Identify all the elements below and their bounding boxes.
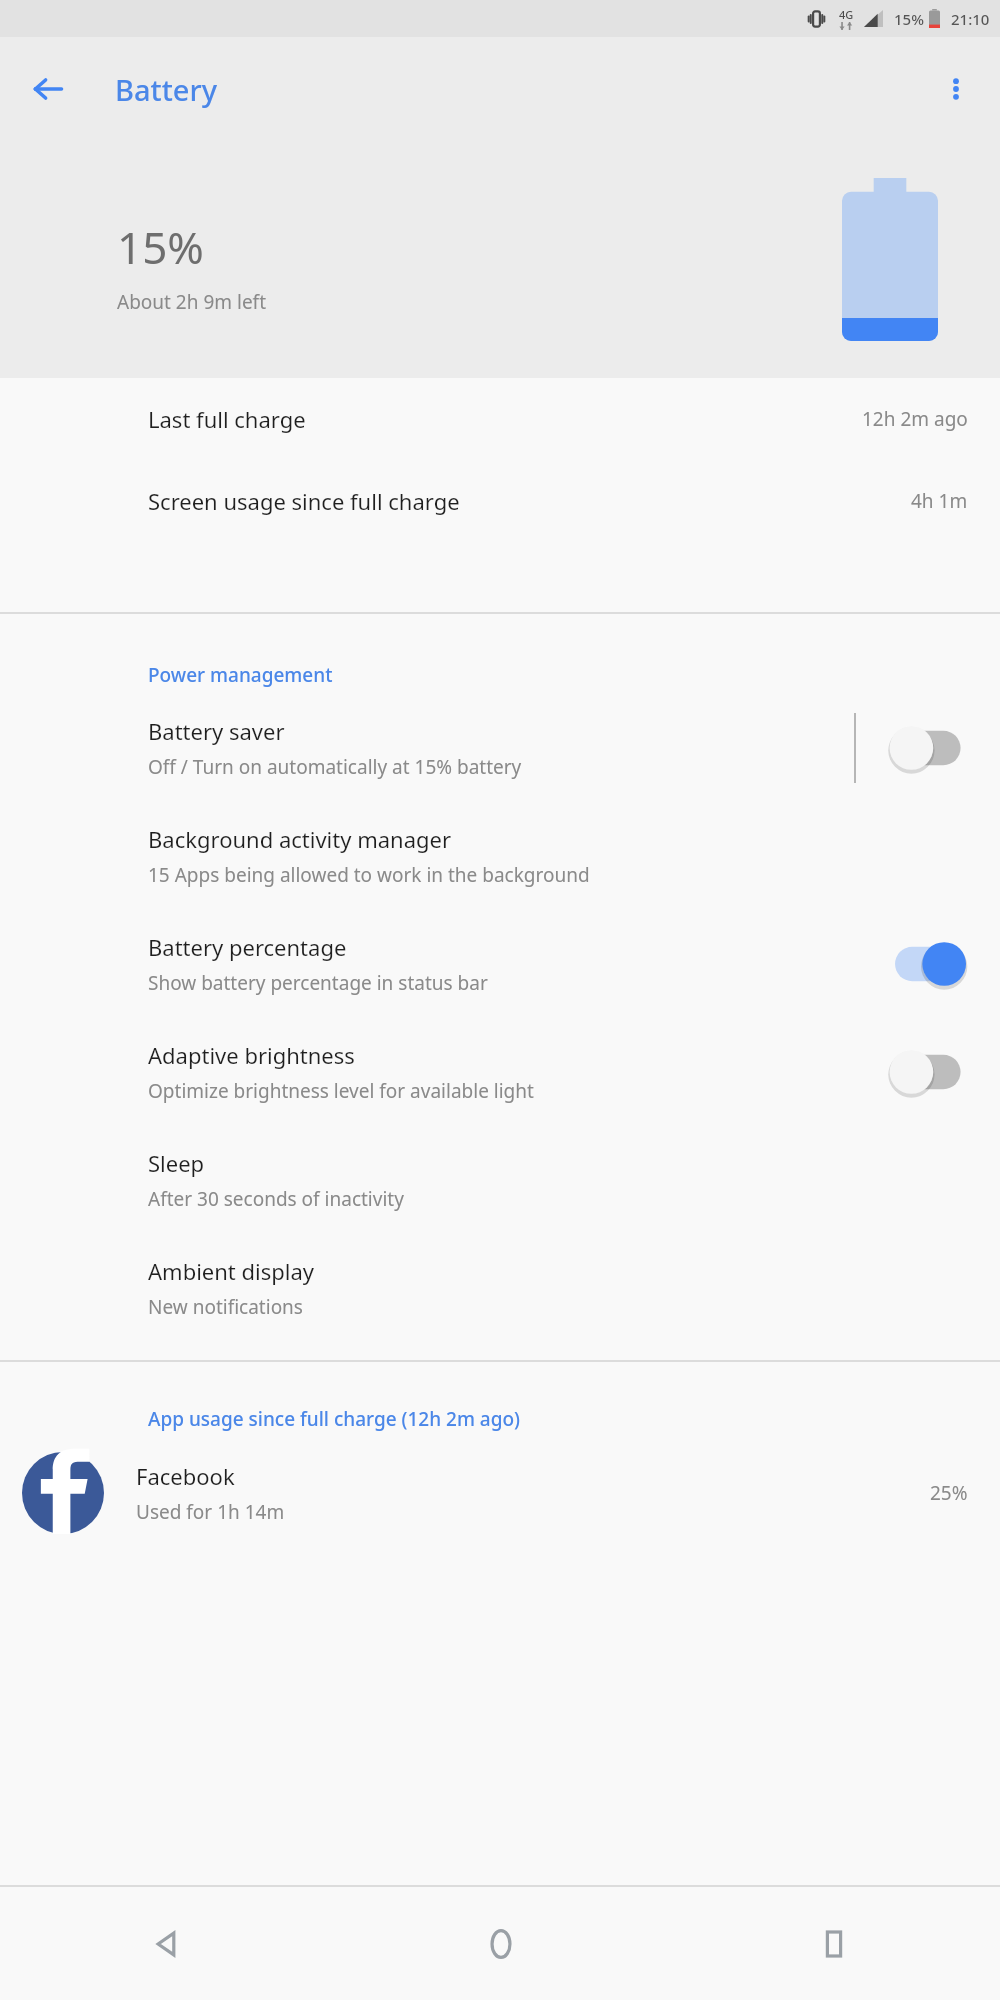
button[interactable]: Recent apps: [667, 1887, 1000, 2000]
staticText: Battery percentage: [148, 932, 347, 962]
staticText: 15 Apps being allowed to work in the bac…: [148, 862, 590, 888]
staticText: 21:10: [951, 9, 990, 29]
staticText: App usage since full charge (12h 2m ago): [148, 1406, 521, 1432]
staticText: After 30 seconds of inactivity: [148, 1186, 404, 1212]
button[interactable]: Screen usage since full charge: [0, 460, 1000, 542]
button[interactable]: Home: [334, 1887, 667, 2000]
staticText: Facebook: [136, 1461, 235, 1491]
button[interactable]: Off: [890, 1046, 974, 1098]
button[interactable]: Ambient display: [0, 1234, 1000, 1342]
button[interactable]: Facebook: [0, 1438, 1000, 1548]
staticText: Screen usage since full charge: [148, 486, 460, 516]
button[interactable]: Back: [18, 59, 78, 119]
button[interactable]: Last full charge: [0, 378, 1000, 460]
staticText: About 2h 9m left: [117, 289, 266, 315]
staticText: 15%: [117, 217, 204, 277]
staticText: Show battery percentage in status bar: [148, 970, 488, 996]
staticText: 25%: [930, 1480, 968, 1506]
button[interactable]: Adaptive brightness: [0, 1018, 1000, 1126]
button[interactable]: More options: [928, 61, 984, 117]
button[interactable]: Background activity manager: [0, 802, 1000, 910]
staticText: Last full charge: [148, 404, 306, 434]
staticText: 4G: [839, 7, 854, 22]
staticText: 12h 2m ago: [862, 406, 968, 432]
staticText: Background activity manager: [148, 824, 452, 854]
staticText: Battery: [115, 70, 217, 109]
button[interactable]: On: [890, 938, 974, 990]
staticText: Sleep: [148, 1148, 205, 1178]
staticText: Off / Turn on automatically at 15% batte…: [148, 754, 522, 780]
staticText: New notifications: [148, 1294, 303, 1320]
button[interactable]: Battery saver: [0, 694, 1000, 802]
button[interactable]: Off: [890, 722, 974, 774]
staticText: Adaptive brightness: [148, 1040, 355, 1070]
staticText: 15%: [894, 9, 924, 29]
button[interactable]: Sleep: [0, 1126, 1000, 1234]
button[interactable]: Battery percentage: [0, 910, 1000, 1018]
staticText: Used for 1h 14m: [136, 1499, 285, 1525]
staticText: Optimize brightness level for available …: [148, 1078, 534, 1104]
staticText: Ambient display: [148, 1256, 315, 1286]
button[interactable]: Back: [0, 1887, 334, 2000]
staticText: Power management: [148, 662, 333, 688]
staticText: 4h 1m: [911, 488, 968, 514]
staticText: Battery saver: [148, 716, 285, 746]
